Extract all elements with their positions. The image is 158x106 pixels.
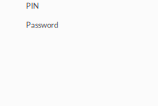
staticText: PIN [26,1,39,10]
staticText: Password [26,20,58,29]
button[interactable]: PIN [0,1,158,13]
button[interactable]: Password [0,20,158,32]
